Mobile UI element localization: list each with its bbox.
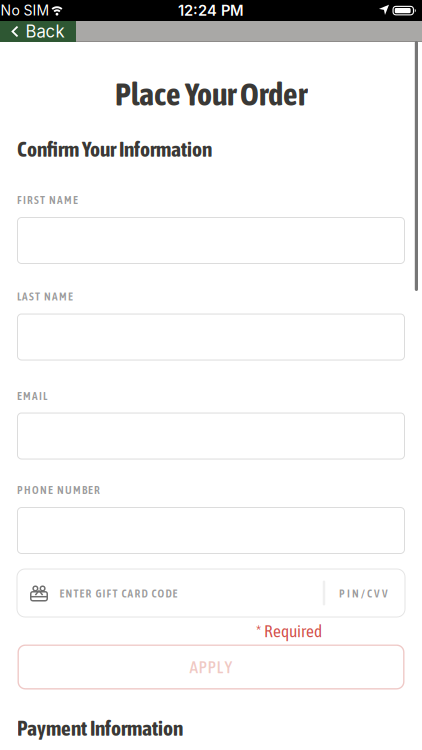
button[interactable]: PHONE NUMBER xyxy=(17,507,405,554)
staticText: Payment Information xyxy=(17,716,183,740)
staticText: 12:24 PM xyxy=(178,2,244,19)
staticText: P I N / C V V xyxy=(339,587,388,600)
staticText: No SIM xyxy=(0,2,49,19)
staticText: Place Your Order xyxy=(115,76,307,112)
button[interactable]: Back xyxy=(0,21,76,42)
staticText: A P P L Y xyxy=(189,657,232,677)
staticText: E M A I L xyxy=(17,389,47,402)
staticText: Confirm Your Information xyxy=(17,137,212,161)
staticText: E N T E R G I F T C A R D C O D E xyxy=(59,587,177,600)
staticText: F I R S T N A M E xyxy=(17,193,78,206)
staticText: Back xyxy=(25,21,64,42)
button[interactable]: Enter gift card code xyxy=(16,568,405,617)
button[interactable]: EMAIL xyxy=(17,412,405,459)
button[interactable]: FIRST NAME xyxy=(17,217,405,264)
staticText: * Required xyxy=(256,621,322,641)
button[interactable]: LAST NAME xyxy=(17,313,405,360)
staticText: P H O N E N U M B E R xyxy=(17,483,100,496)
button[interactable]: A P P L Y xyxy=(17,644,404,689)
staticText: L A S T N A M E xyxy=(17,290,73,303)
